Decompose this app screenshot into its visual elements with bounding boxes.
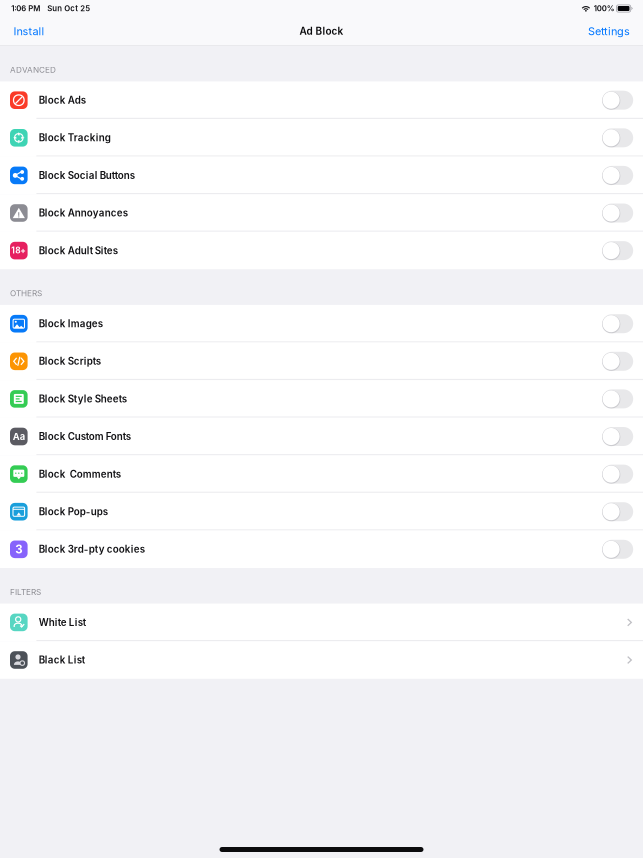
staticText: OTHERS	[10, 288, 42, 298]
staticText: Settings	[588, 25, 630, 38]
staticText: Block Social Buttons	[39, 169, 135, 181]
staticText: Black List	[39, 654, 85, 666]
button[interactable]: Settings	[585, 19, 633, 44]
staticText: Block Images	[39, 318, 103, 330]
button[interactable]: Block Ads	[0, 81, 643, 119]
staticText: Ad Block	[299, 25, 343, 37]
button[interactable]: 3	[0, 530, 643, 568]
button[interactable]: Install	[10, 19, 47, 44]
staticText: Install	[13, 25, 44, 38]
staticText: Block Adult Sites	[39, 245, 118, 257]
staticText: 100%	[594, 4, 615, 13]
staticText: White List	[39, 616, 86, 628]
button[interactable]: White List	[0, 604, 643, 641]
button[interactable]: Black List	[0, 641, 643, 679]
button[interactable]: Block Comments	[0, 455, 643, 493]
button[interactable]: Block Images	[0, 305, 643, 342]
button[interactable]: Block Pop-ups	[0, 493, 643, 530]
staticText: Block Style Sheets	[39, 393, 127, 405]
button[interactable]: Block Style Sheets	[0, 380, 643, 418]
button[interactable]: Aa	[0, 418, 643, 455]
staticText: Block Scripts	[39, 355, 101, 367]
staticText: FILTERS	[10, 587, 41, 597]
button[interactable]: Block Annoyances	[0, 194, 643, 232]
button[interactable]: Block Scripts	[0, 342, 643, 380]
staticText: Block Ads	[39, 94, 86, 106]
staticText: Block Annoyances	[39, 207, 128, 219]
staticText: Aa	[13, 431, 25, 442]
staticText: 18+	[11, 246, 26, 256]
staticText: Block 3rd-pty cookies	[39, 543, 145, 555]
staticText: 3	[15, 542, 22, 556]
staticText: Block Tracking	[39, 132, 111, 144]
button[interactable]: 18+	[0, 232, 643, 269]
staticText: Sun Oct 25	[47, 4, 90, 13]
staticText: ADVANCED	[10, 65, 56, 75]
staticText: Block Custom Fonts	[39, 431, 131, 442]
staticText: 1:06 PM	[11, 4, 40, 13]
button[interactable]: Block Social Buttons	[0, 157, 643, 194]
staticText: Block Pop-ups	[39, 506, 108, 518]
button[interactable]: Block Tracking	[0, 119, 643, 157]
staticText: Block Comments	[39, 468, 121, 480]
